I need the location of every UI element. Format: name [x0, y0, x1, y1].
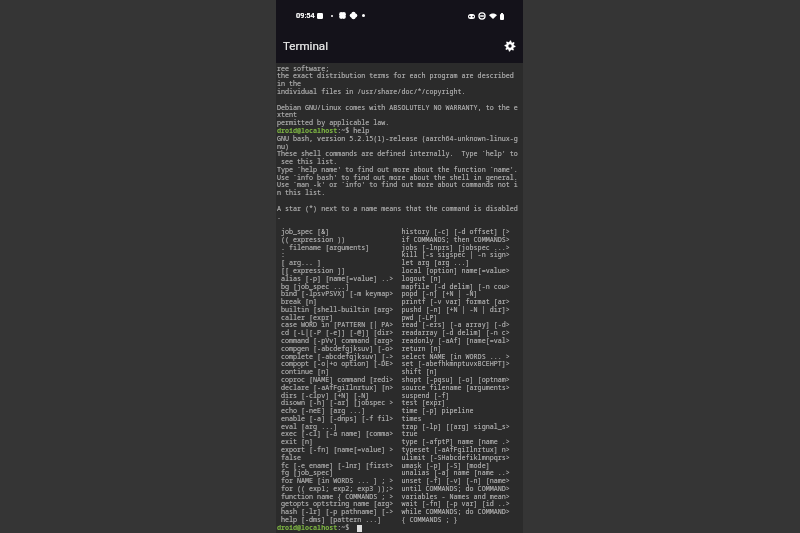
staticText: hash [-lr] [-p pathname] [-> while COMMA…: [277, 508, 510, 516]
staticText: individual files in /usr/share/doc/*/cop…: [277, 88, 466, 96]
staticText: ree software;: [277, 65, 330, 73]
staticText: Use `info bash' to find out more about t…: [277, 174, 518, 182]
staticText: exec [-cl] [-a name] [comma> true: [277, 430, 418, 438]
staticText: nu): [277, 143, 290, 151]
staticText: Type `help name' to find out more about …: [277, 166, 518, 174]
staticText: fc [-e ename] [-lnr] [first> umask [-p] …: [277, 462, 490, 470]
staticText: for (( exp1; exp2; exp3 ));> until COMMA…: [277, 485, 510, 493]
staticText: bg [job_spec ...] mapfile [-d delim] [-n…: [277, 283, 510, 291]
staticText: case WORD in [PATTERN [| PA> read [-ers]…: [277, 321, 510, 329]
staticText: [ arg... ] let arg [arg ...]: [277, 259, 470, 267]
staticText: n this list.: [277, 189, 326, 197]
staticText: Terminal: [283, 39, 328, 53]
staticText: break [n] printf [-v var] format [ar>: [277, 298, 510, 306]
staticText: command [-pVv] command [arg> readonly [-…: [277, 337, 510, 345]
staticText: in the: [277, 80, 302, 88]
staticText: caller [expr] pwd [-LP]: [277, 314, 438, 322]
staticText: exit [n] type [-afptP] name [name .>: [277, 438, 510, 446]
staticText: 09:54: [296, 11, 315, 20]
staticText: dirs [-clpv] [+N] [-N] suspend [-f]: [277, 392, 450, 400]
staticText: permitted by applicable law.: [277, 119, 390, 127]
staticText: echo [-neE] [arg ...] time [-p] pipeline: [277, 407, 474, 415]
staticText: . filename [arguments] jobs [-lnprs] [jo…: [277, 244, 510, 252]
staticText: builtin [shell-builtin [arg> pushd [-n] …: [277, 306, 510, 314]
staticText: droid@localhost:~$ help: [277, 127, 370, 135]
staticText: GNU bash, version 5.2.15(1)-release (aar…: [277, 135, 518, 143]
staticText: coproc [NAME] command [redi> shopt [-pqs…: [277, 376, 510, 384]
staticText: [[ expression ]] local [option] name[=va…: [277, 267, 510, 275]
staticText: enable [-a] [-dnps] [-f fil> times: [277, 415, 422, 423]
staticText: export [-fn] [name[=value] > typeset [-a…: [277, 446, 510, 454]
staticText: for NAME [in WORDS ... ] ; > unset [-f] …: [277, 477, 510, 485]
button[interactable]: Settings: [499, 35, 521, 57]
staticText: A star (*) next to a name means that the…: [277, 205, 518, 213]
staticText: complete [-abcdefgjksuv] [-> select NAME…: [277, 353, 510, 361]
staticText: : kill [-s sigspec | -n sign>: [277, 251, 510, 259]
staticText: see this list.: [277, 158, 338, 166]
staticText: .: [277, 213, 282, 221]
staticText: getopts optstring name [arg> wait [-fn] …: [277, 500, 510, 508]
staticText: compgen [-abcdefgjksuv] [-o> return [n]: [277, 345, 442, 353]
staticText: continue [n] shift [n]: [277, 368, 438, 376]
staticText: job_spec [&] history [-c] [-d offset] [>: [277, 228, 510, 236]
staticText: cd [-L|[-P [-e]] [-@]] [dir> readarray […: [277, 329, 510, 337]
button[interactable]: Terminal output: [276, 63, 523, 533]
staticText: Use `man -k' or `info' to find out more …: [277, 181, 518, 189]
staticText: alias [-p] [name[=value] ..> logout [n]: [277, 275, 442, 283]
staticText: Debian GNU/Linux comes with ABSOLUTELY N…: [277, 104, 518, 112]
staticText: compopt [-o|+o option] [-DE> set [-abefh…: [277, 360, 510, 368]
staticText: xtent: [277, 111, 298, 119]
staticText: droid@localhost:~$: [277, 524, 354, 532]
staticText: (( expression )) if COMMANDS; then COMMA…: [277, 236, 510, 244]
staticText: fg [job_spec] unalias [-a] name [name ..…: [277, 469, 510, 477]
staticText: declare [-aAfFgiIlnrtux] [n> source file…: [277, 384, 510, 392]
staticText: function name { COMMANDS ; > variables -…: [277, 493, 510, 501]
staticText: These shell commands are defined interna…: [277, 150, 518, 158]
staticText: bind [-lpsvPSVX] [-m keymap> popd [-n] […: [277, 290, 478, 298]
staticText: eval [arg ...] trap [-lp] [[arg] signal_…: [277, 423, 510, 431]
staticText: disown [-h] [-ar] [jobspec > test [expr]: [277, 399, 446, 407]
staticText: the exact distribution terms for each pr…: [277, 72, 518, 80]
staticText: help [-dms] [pattern ...] { COMMANDS ; }: [277, 516, 458, 524]
staticText: false ulimit [-SHabcdefiklmnpqrs>: [277, 454, 510, 462]
